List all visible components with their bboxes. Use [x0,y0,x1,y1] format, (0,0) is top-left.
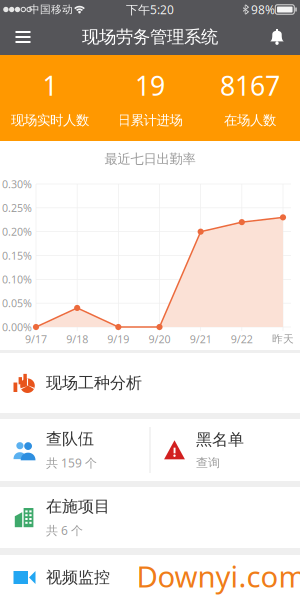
staticText: 98% [251,1,275,17]
button[interactable]: 现场工种分析 [0,353,300,413]
staticText: 视频监控 [46,568,110,587]
button[interactable]: 8167 [200,55,300,141]
staticText: 0.20% [2,225,32,239]
staticText: Downyi.com [136,556,300,595]
staticText: 现场劳务管理系统 [82,26,218,48]
staticText: 1 [42,68,57,103]
staticText: 黑名单 [196,430,244,449]
staticText: 在场人数 [224,112,276,128]
staticText: 昨天 [272,332,294,345]
staticText: 9/22 [231,332,253,346]
staticText: 最近七日出勤率 [104,151,195,167]
staticText: 0.05% [2,296,32,310]
staticText: 0.00% [2,320,32,334]
button[interactable]: Notifications [254,19,300,55]
staticText: 下午5:20 [126,1,174,17]
staticText: 共 159 个 [46,455,97,471]
staticText: 9/21 [190,332,212,346]
staticText: 0.10% [2,272,32,286]
button[interactable]: 在施项目 [0,487,150,548]
staticText: 查队伍 [46,429,94,449]
button[interactable]: Menu [0,19,46,55]
staticText: 现场工种分析 [46,373,142,393]
staticText: 19 [135,68,165,103]
staticText: 0.15% [2,248,32,263]
button[interactable]: 查队伍 [0,419,150,481]
staticText: 0.30% [2,177,32,191]
staticText: 9/18 [66,332,88,346]
staticText: 9/17 [25,332,47,346]
staticText: 9/19 [107,332,129,346]
staticText: 9/20 [148,332,170,346]
staticText: 0.25% [2,201,32,215]
button[interactable]: 19 [100,55,200,141]
staticText: 共 6 个 [46,522,83,538]
staticText: 查询 [196,455,220,470]
staticText: 日累计进场 [117,112,182,128]
staticText: 中国移动 [29,3,73,16]
button[interactable]: 视频监控 [0,555,300,600]
button[interactable]: 1 [0,55,100,141]
staticText: 8167 [220,68,280,103]
staticText: 在施项目 [46,497,110,516]
button[interactable]: 黑名单 [150,419,300,481]
staticText: 现场实时人数 [11,112,89,128]
